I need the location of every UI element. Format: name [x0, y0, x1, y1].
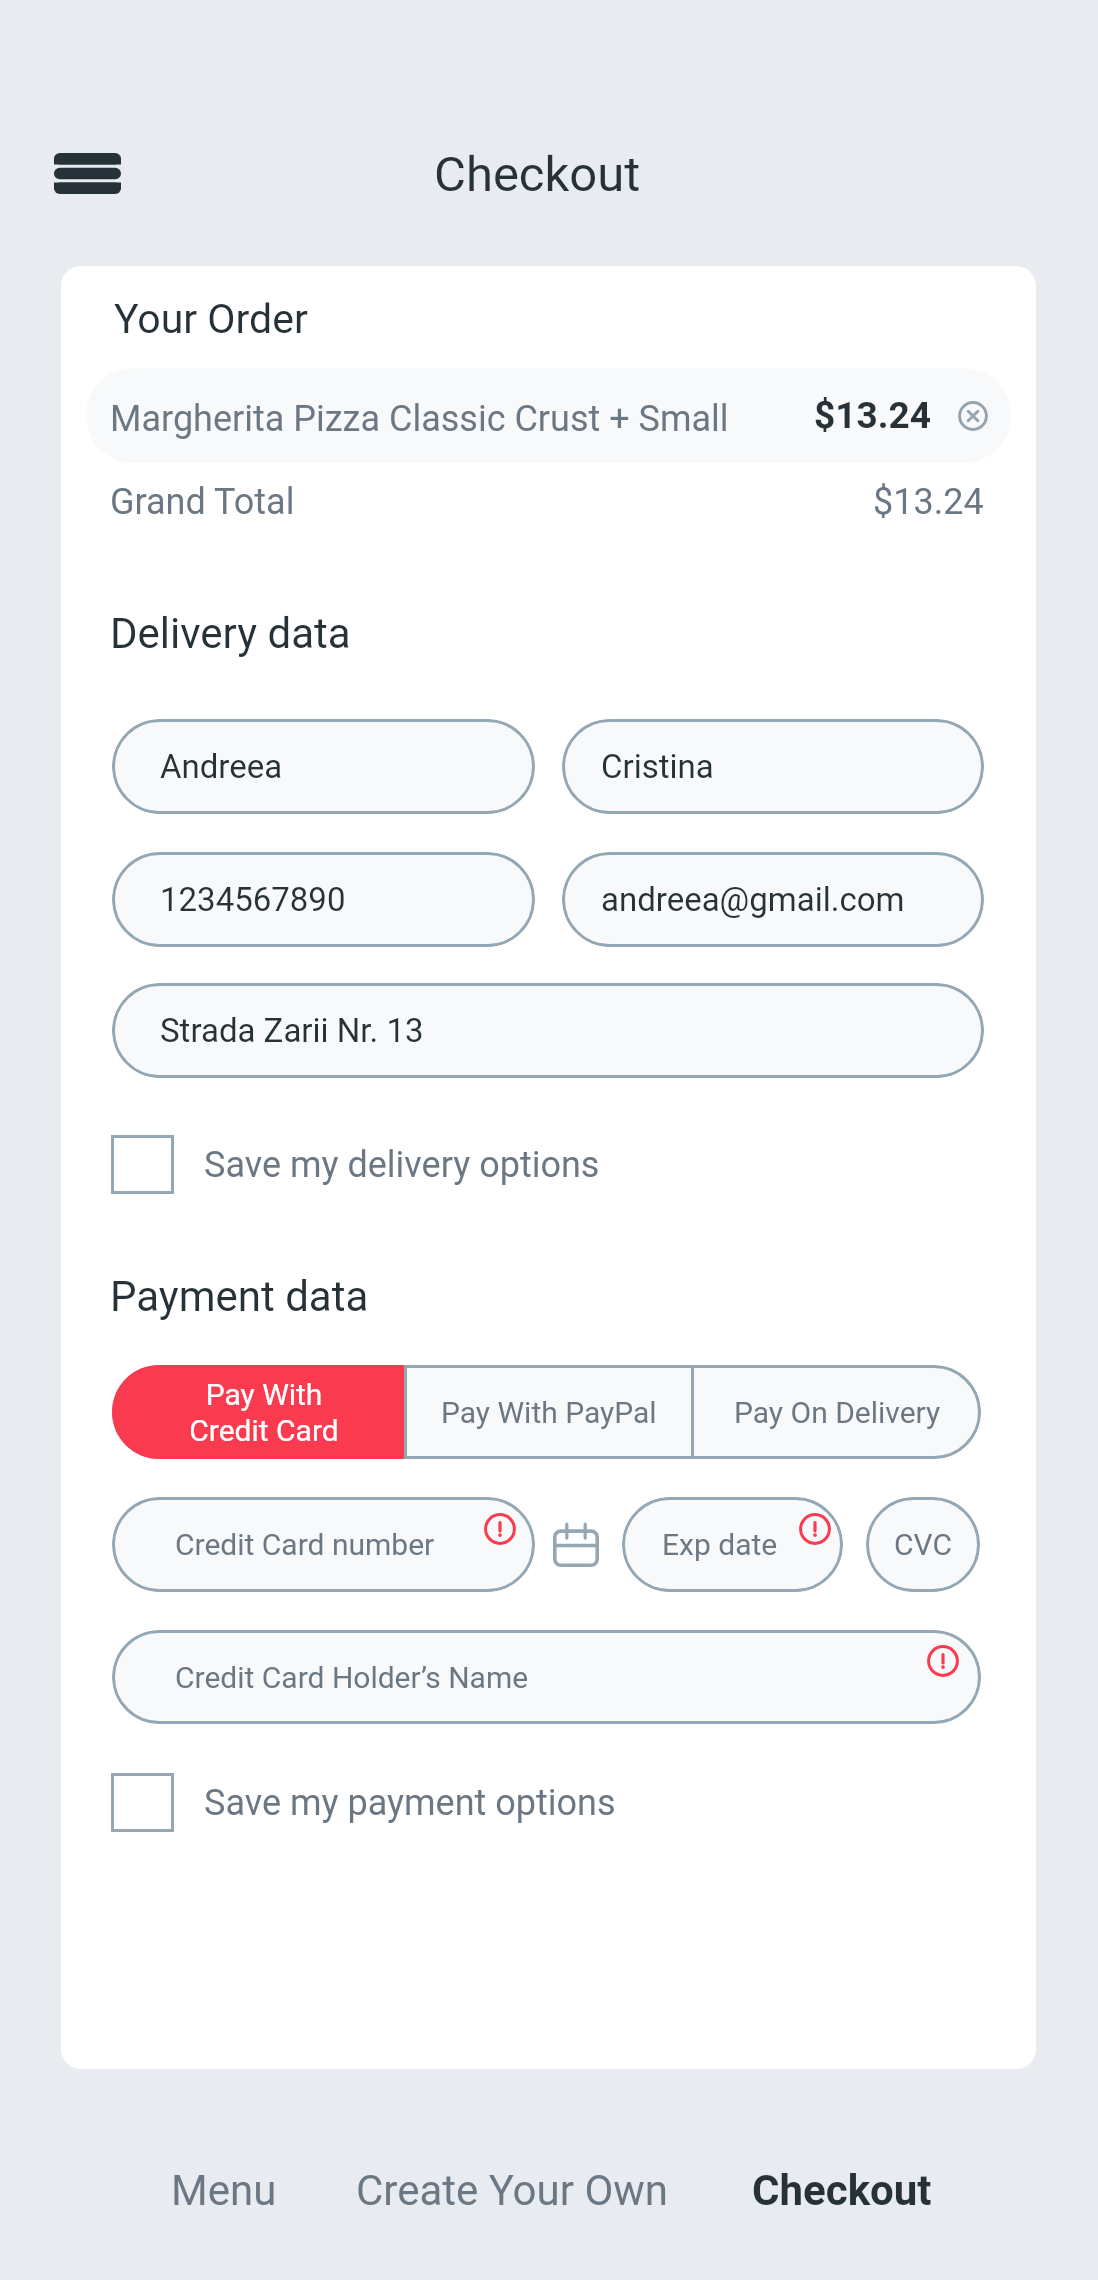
button[interactable]: Remove item [958, 401, 988, 431]
button[interactable]: Save my delivery options [111, 1135, 600, 1194]
staticText: Menu [171, 2166, 277, 2215]
staticText: Pay With PayPal [441, 1395, 657, 1430]
button[interactable]: Margherita Pizza Classic Crust + Small [86, 368, 1011, 463]
staticText: Pay On Delivery [734, 1395, 941, 1430]
staticText: Payment data [110, 1272, 369, 1321]
button[interactable]: Pay With PayPal [407, 1365, 691, 1459]
button[interactable]: Cristina [562, 719, 984, 814]
staticText: 1234567890 [160, 880, 346, 919]
staticText: Strada Zarii Nr. 13 [160, 1011, 424, 1050]
button[interactable]: Pay On Delivery [694, 1365, 981, 1459]
button[interactable]: Credit Card number [112, 1497, 535, 1592]
button[interactable]: andreea@gmail.com [562, 852, 984, 947]
staticText: CVC [894, 1527, 952, 1562]
staticText: Cristina [601, 747, 714, 786]
button[interactable]: Menu [151, 2150, 297, 2231]
staticText: andreea@gmail.com [601, 880, 905, 919]
button[interactable]: Checkout [732, 2150, 952, 2231]
button[interactable]: Open menu [36, 135, 139, 212]
staticText: Save my payment options [204, 1782, 616, 1824]
staticText: Credit Card number [175, 1527, 435, 1562]
button[interactable]: Credit Card Holder’s Name [112, 1630, 981, 1724]
button[interactable]: Pay With Credit Card [112, 1365, 404, 1459]
button[interactable]: Save my payment options [111, 1773, 616, 1832]
staticText: Credit Card Holder’s Name [175, 1660, 529, 1695]
button[interactable]: Andreea [112, 719, 535, 814]
button[interactable]: Create Your Own [336, 2150, 689, 2231]
staticText: Create Your Own [356, 2166, 669, 2215]
button[interactable]: Exp date [622, 1497, 843, 1592]
button[interactable]: Strada Zarii Nr. 13 [112, 983, 984, 1078]
staticText: Exp date [662, 1527, 778, 1562]
staticText: Your Order [114, 295, 308, 343]
button[interactable]: Pick expiry date [553, 1524, 599, 1567]
staticText: Checkout [434, 146, 641, 203]
staticText: $13.24 [873, 481, 984, 523]
staticText: Checkout [752, 2166, 932, 2215]
staticText: $13.24 [814, 394, 931, 437]
staticText: Margherita Pizza Classic Crust + Small [110, 398, 729, 440]
staticText: Grand Total [110, 481, 295, 523]
staticText: Andreea [160, 747, 283, 786]
staticText: Save my delivery options [204, 1144, 600, 1186]
button[interactable]: CVC [866, 1497, 980, 1592]
staticText: Delivery data [110, 609, 351, 658]
button[interactable]: 1234567890 [112, 852, 535, 947]
staticText: Pay With Credit Card [189, 1377, 339, 1448]
